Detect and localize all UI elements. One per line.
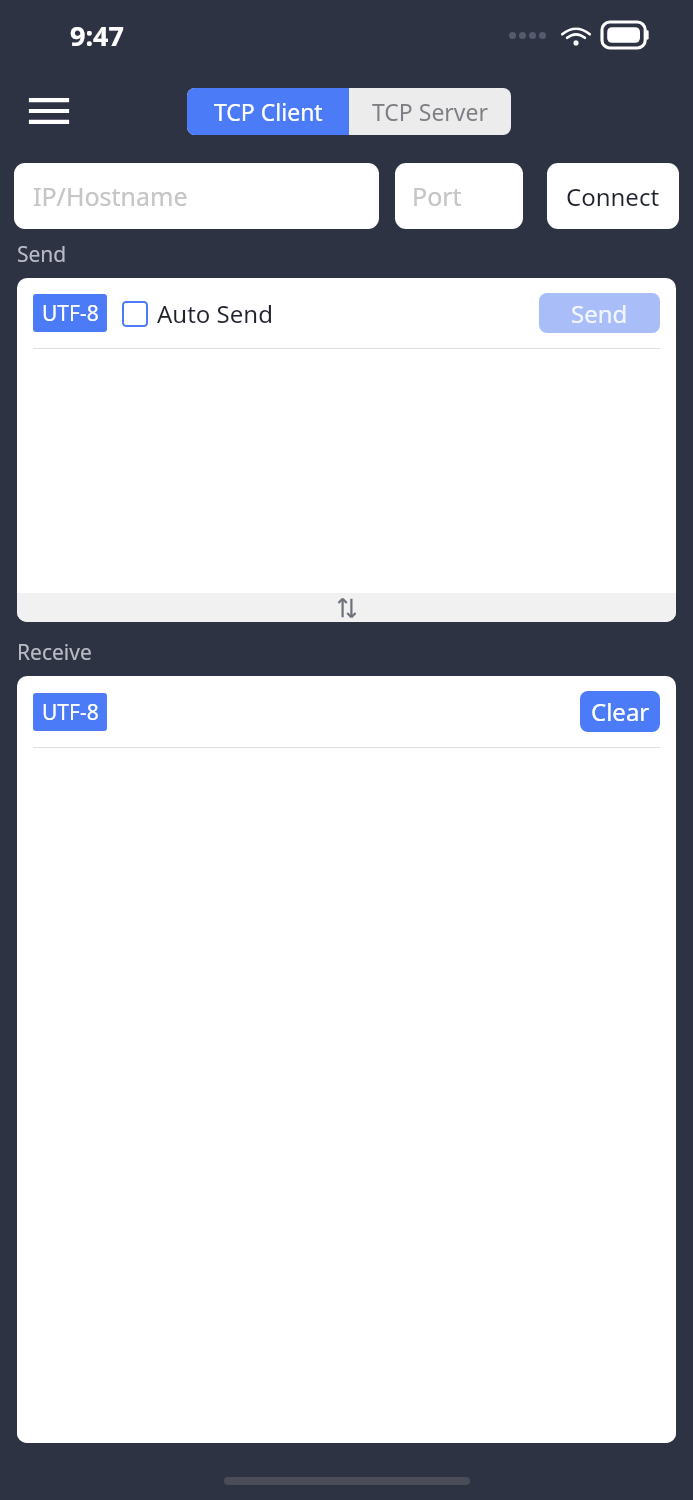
staticText: Clear bbox=[591, 695, 650, 728]
button[interactable]: Send bbox=[539, 293, 660, 333]
staticText: UTF-8 bbox=[42, 698, 99, 727]
button[interactable]: Swap send mode bbox=[17, 593, 676, 622]
staticText: Send bbox=[571, 297, 628, 330]
staticText: UTF-8 bbox=[42, 299, 99, 328]
staticText: Send bbox=[17, 240, 67, 269]
button[interactable]: UTF-8 bbox=[33, 294, 107, 332]
staticText: Connect bbox=[566, 180, 660, 213]
button[interactable]: Connect bbox=[547, 163, 679, 229]
staticText: Port bbox=[412, 179, 462, 213]
button[interactable]: TCP Server bbox=[349, 88, 511, 135]
button[interactable]: Menu bbox=[20, 82, 78, 140]
button[interactable]: Auto Send bbox=[122, 297, 273, 330]
staticText: Auto Send bbox=[157, 297, 273, 330]
button[interactable]: IP/Hostname bbox=[14, 163, 379, 229]
staticText: IP/Hostname bbox=[33, 179, 188, 213]
button[interactable]: Port bbox=[395, 163, 523, 229]
staticText: TCP Client bbox=[214, 96, 323, 127]
staticText: 9:47 bbox=[70, 17, 124, 54]
button[interactable]: UTF-8 bbox=[33, 693, 107, 731]
staticText: Receive bbox=[17, 638, 92, 667]
button[interactable]: Clear bbox=[580, 691, 660, 732]
button[interactable]: TCP Client bbox=[187, 88, 349, 135]
staticText: TCP Server bbox=[372, 96, 489, 127]
